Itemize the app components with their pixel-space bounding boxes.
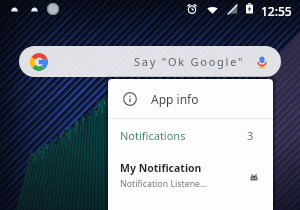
button[interactable]: My Notification <box>120 161 273 190</box>
staticText: 12:55 <box>261 3 292 19</box>
staticText: Say "Ok Google" <box>134 54 245 69</box>
staticText: My Notification <box>120 161 202 175</box>
staticText: App info <box>151 91 199 107</box>
button[interactable]: App info <box>108 79 273 118</box>
staticText: 3 <box>247 128 254 143</box>
staticText: Notifications <box>120 128 186 143</box>
other: Voice search <box>256 56 268 68</box>
button[interactable]: Say "Ok Google" <box>19 46 281 77</box>
button[interactable]: Notifications <box>108 119 273 151</box>
staticText: Notification Listene... <box>120 178 208 190</box>
